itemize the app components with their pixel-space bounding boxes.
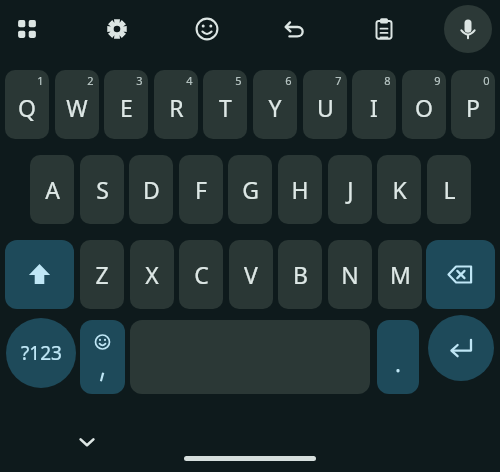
staticText: R <box>169 92 184 123</box>
staticText: Q <box>18 92 36 123</box>
staticText: B <box>293 259 308 290</box>
button[interactable]: G <box>228 155 272 224</box>
staticText: P <box>466 92 480 123</box>
button[interactable]: X <box>130 240 174 309</box>
staticText: Z <box>95 259 109 290</box>
button[interactable]: Clipboard <box>363 6 405 52</box>
button[interactable]: 9 <box>402 70 446 139</box>
button[interactable]: 3 <box>104 70 148 139</box>
staticText: N <box>341 259 359 290</box>
staticText: 8 <box>384 73 391 88</box>
button[interactable]: Settings <box>96 6 138 52</box>
button[interactable]: Period <box>377 320 419 394</box>
staticText: L <box>443 174 456 205</box>
button[interactable]: Backspace <box>426 240 495 309</box>
button[interactable]: Emoji and comma <box>80 320 125 394</box>
button[interactable]: J <box>328 155 372 224</box>
staticText: 1 <box>37 73 44 88</box>
button[interactable]: D <box>129 155 173 224</box>
staticText: W <box>66 92 88 123</box>
button[interactable]: Voice input <box>444 5 492 53</box>
staticText: A <box>45 174 60 205</box>
button[interactable]: 1 <box>5 70 49 139</box>
staticText: Y <box>268 92 282 123</box>
staticText: F <box>195 174 207 205</box>
button[interactable]: 8 <box>352 70 396 139</box>
staticText: 7 <box>335 73 342 88</box>
button[interactable]: N <box>328 240 372 309</box>
button[interactable]: L <box>427 155 471 224</box>
staticText: T <box>219 92 232 123</box>
button[interactable]: Undo <box>274 6 316 52</box>
button[interactable]: 6 <box>253 70 297 139</box>
staticText: 2 <box>87 73 94 88</box>
button[interactable]: S <box>80 155 124 224</box>
button[interactable]: A <box>30 155 74 224</box>
staticText: K <box>392 174 407 205</box>
staticText: U <box>317 92 334 123</box>
button[interactable]: 2 <box>55 70 99 139</box>
button[interactable]: 7 <box>303 70 347 139</box>
staticText: ?123 <box>21 340 62 366</box>
staticText: E <box>120 92 133 123</box>
button[interactable]: K <box>377 155 421 224</box>
button[interactable]: Hide keyboard <box>70 425 104 459</box>
staticText: 9 <box>434 73 441 88</box>
button[interactable]: F <box>179 155 223 224</box>
staticText: 6 <box>285 73 292 88</box>
button[interactable]: 5 <box>203 70 247 139</box>
button[interactable]: M <box>378 240 422 309</box>
button[interactable]: ?123 <box>6 318 76 388</box>
button[interactable]: 4 <box>154 70 198 139</box>
button[interactable]: Z <box>80 240 124 309</box>
staticText: J <box>347 174 354 205</box>
button[interactable]: Shift <box>5 240 74 309</box>
button[interactable]: B <box>278 240 322 309</box>
staticText: X <box>145 259 159 290</box>
button[interactable]: C <box>179 240 223 309</box>
button[interactable]: H <box>278 155 322 224</box>
button[interactable]: Enter <box>428 315 494 381</box>
button[interactable]: 0 <box>451 70 495 139</box>
staticText: I <box>370 92 378 123</box>
button[interactable]: Emoji <box>186 6 228 52</box>
staticText: 5 <box>235 73 242 88</box>
staticText: O <box>415 92 433 123</box>
button[interactable]: V <box>229 240 273 309</box>
staticText: G <box>242 174 259 205</box>
staticText: S <box>96 174 109 205</box>
staticText: M <box>390 259 411 290</box>
button[interactable]: Switch keyboard <box>6 6 48 52</box>
staticText: 0 <box>483 73 490 88</box>
staticText: 3 <box>136 73 143 88</box>
staticText: C <box>194 259 209 290</box>
staticText: V <box>244 259 258 290</box>
staticText: D <box>143 174 160 205</box>
staticText: 4 <box>186 73 193 88</box>
staticText: H <box>291 174 309 205</box>
